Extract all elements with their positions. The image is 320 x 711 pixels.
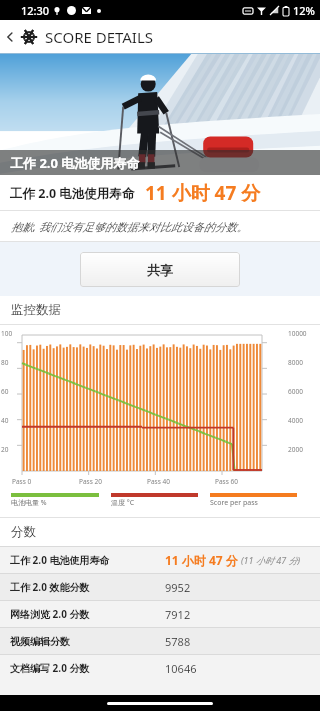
button[interactable]: 文档编写 2.0 分数 [0,655,320,681]
staticText: 工作 2.0 电池使用寿命 [10,154,140,172]
staticText: 80 [1,358,9,367]
button[interactable]: 工作 2.0 电池使用寿命 [0,547,320,573]
staticText: 5788 [165,634,191,649]
staticText: Pass 20 [79,477,102,486]
button[interactable]: Back [0,20,20,53]
staticText: Pass 60 [215,477,238,486]
staticText: 9952 [165,580,191,595]
staticText: 7912 [165,607,191,622]
staticText: 11 小时 47 分 [145,180,261,206]
staticText: Pass 0 [12,477,32,486]
staticText: (11 小时 47 分) [241,554,301,566]
staticText: 工作 2.0 电池使用寿命 [10,185,135,202]
staticText: Score per pass [210,498,258,508]
staticText: 抱歉, 我们没有足够的数据来对比此设备的分数。 [11,219,248,234]
staticText: 电池电量 % [11,498,47,508]
staticText: 10646 [165,661,197,676]
staticText: 6000 [288,387,303,396]
staticText: 4000 [288,416,303,425]
staticText: 8000 [288,358,303,367]
staticText: 共享 [147,262,173,278]
staticText: Pass 40 [147,477,170,486]
staticText: 20 [1,445,9,454]
staticText: 60 [1,387,9,396]
staticText: 工作 2.0 效能分数 [10,580,165,594]
button[interactable]: 网络浏览 2.0 分数 [0,601,320,627]
staticText: 视频编辑分数 [10,635,165,648]
staticText: 网络浏览 2.0 分数 [10,607,165,621]
staticText: 分数 [11,524,36,540]
staticText: 40 [1,416,9,425]
button[interactable]: 视频编辑分数 [0,628,320,654]
staticText: SCORE DETAILS [45,27,154,47]
staticText: 100 [1,329,13,338]
staticText: 10000 [288,329,307,338]
staticText: 文档编写 2.0 分数 [10,661,165,675]
staticText: 2000 [288,445,303,454]
staticText: 工作 2.0 电池使用寿命 [10,553,165,567]
staticText: 12% [293,3,315,18]
staticText: 温度 °C [111,498,135,508]
button[interactable]: 工作 2.0 效能分数 [0,574,320,600]
staticText: 12:30 [21,3,50,18]
button[interactable]: 共享 [80,252,240,287]
staticText: 监控数据 [11,302,61,318]
staticText: 11 小时 47 分 [165,552,238,568]
